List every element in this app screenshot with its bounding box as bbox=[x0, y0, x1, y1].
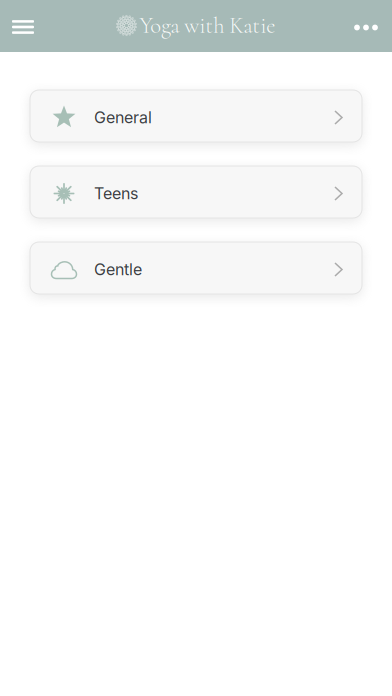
button[interactable]: Menu bbox=[0, 0, 46, 52]
staticText: Yoga with Katie bbox=[139, 12, 275, 39]
button[interactable]: General bbox=[30, 90, 362, 142]
button[interactable]: Gentle bbox=[30, 242, 362, 294]
staticText: General bbox=[94, 108, 152, 127]
staticText: Gentle bbox=[94, 260, 142, 279]
button[interactable]: More options bbox=[340, 0, 392, 52]
staticText: Teens bbox=[94, 184, 138, 203]
button[interactable]: Teens bbox=[30, 166, 362, 218]
